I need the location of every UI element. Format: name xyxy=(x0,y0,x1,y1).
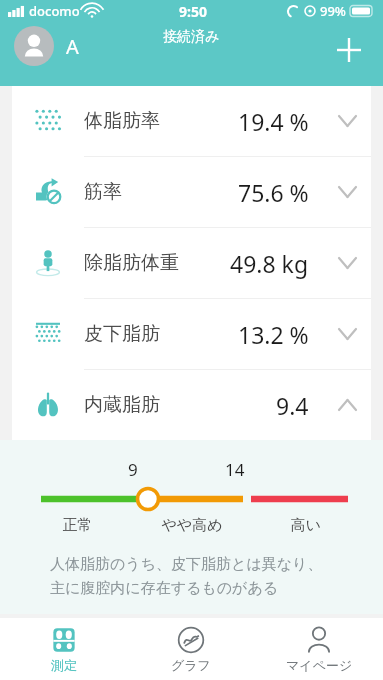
button[interactable]: 皮下脂肪 xyxy=(12,299,371,369)
staticText: 99% xyxy=(320,2,346,20)
staticText: 49.8 kg xyxy=(230,248,309,279)
staticText: 9:50 xyxy=(179,2,207,21)
button[interactable]: 筋率 xyxy=(12,157,371,227)
staticText: 筋率 xyxy=(84,180,122,204)
staticText: docomo xyxy=(29,2,80,20)
staticText: 13.2 % xyxy=(238,319,309,350)
button[interactable]: 内蔵脂肪 xyxy=(12,370,371,440)
staticText: 75.6 % xyxy=(238,177,309,208)
staticText: A xyxy=(66,33,79,60)
staticText: 14 xyxy=(225,458,245,480)
button[interactable]: マイページ xyxy=(255,618,383,680)
staticText: 除脂肪体重 xyxy=(84,251,179,275)
staticText: 9.4 xyxy=(276,390,309,421)
staticText: 体脂肪率 xyxy=(84,109,160,133)
button[interactable]: グラフ xyxy=(127,618,255,680)
staticText: 皮下脂肪 xyxy=(84,322,160,346)
button[interactable]: 体脂肪率 xyxy=(12,86,371,156)
button[interactable]: 除脂肪体重 xyxy=(12,228,371,298)
staticText: 測定 xyxy=(51,657,77,673)
button[interactable]: 測定 xyxy=(0,618,127,680)
staticText: 人体脂肪のうち、皮下脂肪とは異なり、 xyxy=(50,555,323,574)
staticText: 高い xyxy=(249,516,363,535)
staticText: 正常 xyxy=(20,516,135,535)
staticText: やや高め xyxy=(135,516,249,535)
staticText: 主に腹腔内に存在するものがある xyxy=(50,579,279,598)
staticText: 9 xyxy=(128,458,138,480)
button[interactable]: A xyxy=(14,26,79,66)
staticText: グラフ xyxy=(171,657,211,673)
button[interactable]: Add xyxy=(329,30,369,70)
staticText: 19.4 % xyxy=(238,106,309,137)
staticText: 内蔵脂肪 xyxy=(84,393,160,417)
staticText: マイページ xyxy=(286,657,353,673)
staticText: 接続済み xyxy=(163,28,220,46)
